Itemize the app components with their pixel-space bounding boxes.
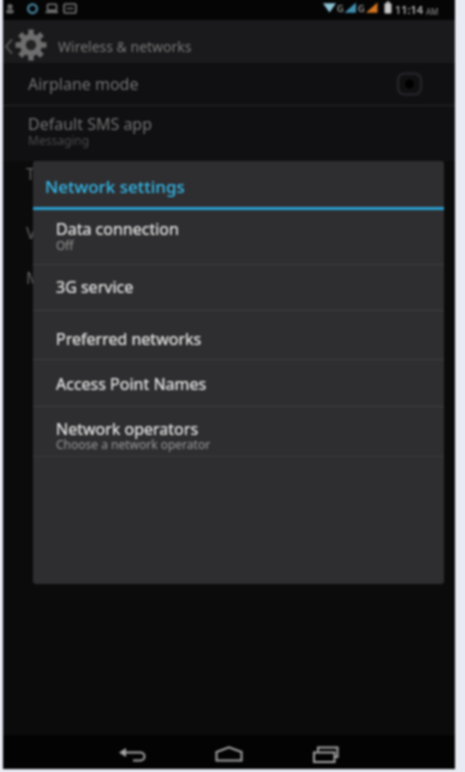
staticText: Network operators xyxy=(56,418,199,440)
button[interactable] xyxy=(3,63,455,106)
staticText: 3G service xyxy=(56,276,134,298)
staticText: M xyxy=(26,267,41,289)
staticText: G xyxy=(358,2,365,14)
button[interactable] xyxy=(3,20,213,63)
button[interactable] xyxy=(107,735,159,769)
staticText: V xyxy=(26,222,36,244)
staticText: Choose a network operator xyxy=(56,436,211,452)
button[interactable] xyxy=(33,406,444,456)
staticText: Network settings xyxy=(45,175,185,198)
staticText: AM xyxy=(426,6,439,17)
staticText: Default SMS app xyxy=(28,113,153,135)
button[interactable] xyxy=(203,735,255,769)
button[interactable] xyxy=(298,735,350,769)
button[interactable] xyxy=(3,106,455,159)
staticText: Off xyxy=(56,237,74,253)
staticText: Access Point Names xyxy=(56,373,207,395)
staticText: Data connection xyxy=(56,218,179,240)
staticText: Wireless & networks xyxy=(58,37,192,56)
staticText: G xyxy=(337,2,344,14)
staticText: Airplane mode xyxy=(28,73,139,95)
staticText: Preferred networks xyxy=(56,328,202,350)
button[interactable] xyxy=(33,210,444,264)
staticText: T xyxy=(26,163,35,185)
button[interactable] xyxy=(33,359,444,406)
button[interactable] xyxy=(33,310,444,359)
staticText: 11:14 xyxy=(395,2,424,17)
button[interactable] xyxy=(33,264,444,310)
staticText: Messaging xyxy=(28,132,90,148)
